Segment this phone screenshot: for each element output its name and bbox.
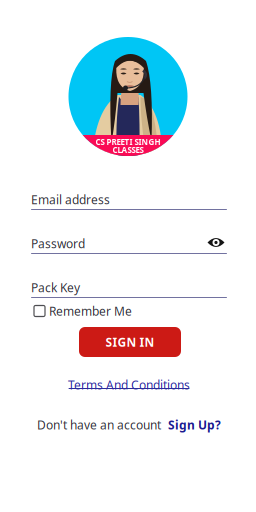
- staticText: CS PREETI SINGH: [95, 137, 160, 147]
- staticText: Terms And Conditions: [68, 377, 190, 393]
- button[interactable]: Remember Me: [34, 304, 227, 318]
- staticText: SIGN IN: [105, 334, 154, 350]
- staticText: Pack Key: [31, 279, 80, 295]
- button[interactable]: Don't have an account: [37, 417, 221, 433]
- staticText: Password: [31, 235, 85, 251]
- staticText: Don't have an account: [37, 417, 161, 433]
- staticText: Email address: [31, 191, 110, 207]
- staticText: CLASSES: [112, 145, 143, 155]
- button[interactable]: SIGN IN: [79, 327, 181, 357]
- staticText: Remember Me: [49, 303, 132, 319]
- button[interactable]: Terms And Conditions: [68, 377, 190, 389]
- staticText: Sign Up?: [168, 417, 221, 433]
